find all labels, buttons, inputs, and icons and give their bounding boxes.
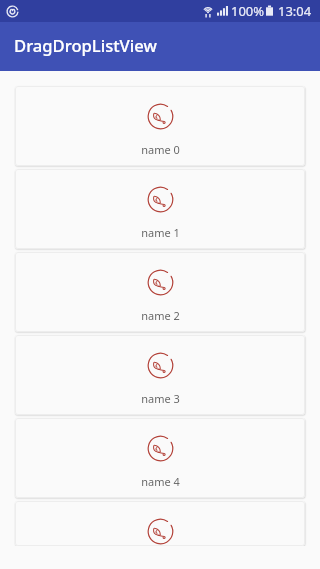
other: Item badge [148, 270, 173, 295]
other: Wi-Fi [203, 5, 213, 18]
button[interactable]: Item badge [15, 335, 305, 415]
staticText: 100% [231, 2, 265, 20]
button[interactable]: Item badge [15, 169, 305, 249]
staticText: name 0 [141, 142, 180, 157]
staticText: 13:04 [278, 2, 312, 20]
other: Battery full [266, 5, 273, 17]
staticText: name 3 [141, 391, 180, 406]
staticText: name 4 [141, 474, 180, 489]
other: Item badge [148, 436, 173, 461]
staticText: name 1 [141, 225, 180, 240]
button[interactable]: Item badge [15, 418, 305, 498]
button[interactable]: Item badge [15, 501, 305, 546]
other: Item badge [148, 187, 173, 212]
button[interactable]: Item badge [15, 86, 305, 166]
other: Item badge [148, 519, 173, 544]
staticText: name 2 [141, 308, 180, 323]
other: Item badge [148, 104, 173, 129]
staticText: DragDropListView [14, 34, 157, 57]
button[interactable]: Item badge [15, 252, 305, 332]
other: Screen recording [6, 5, 19, 18]
other: Item badge [148, 353, 173, 378]
other: Mobile signal [217, 6, 228, 17]
